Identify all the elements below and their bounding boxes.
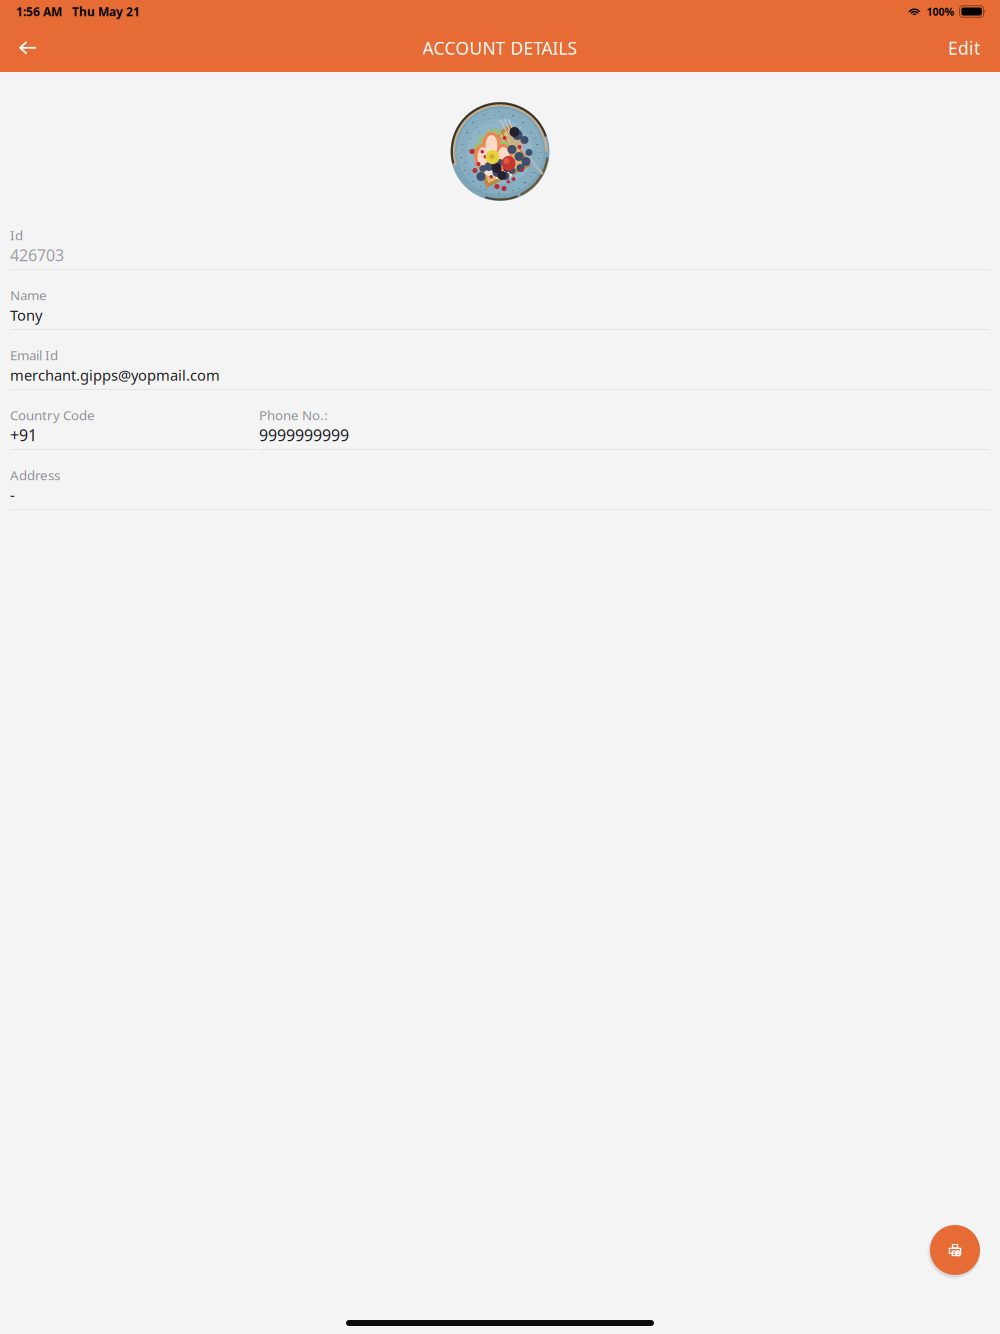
button[interactable]: Print settings bbox=[927, 1222, 983, 1278]
button[interactable]: Edit bbox=[940, 28, 980, 68]
staticText: merchant.gipps@yopmail.com bbox=[10, 365, 220, 385]
staticText: Name bbox=[10, 286, 47, 304]
staticText: 1:56 AM bbox=[16, 3, 62, 19]
staticText: Tony bbox=[10, 305, 42, 325]
staticText: Address bbox=[10, 466, 60, 484]
staticText: 100% bbox=[927, 4, 955, 19]
staticText: Email Id bbox=[10, 346, 58, 364]
staticText: +91 bbox=[10, 424, 37, 446]
staticText: 426703 bbox=[10, 244, 64, 266]
staticText: Id bbox=[10, 226, 23, 244]
staticText: Phone No.: bbox=[259, 406, 328, 424]
staticText: Country Code bbox=[10, 406, 95, 424]
staticText: Edit bbox=[948, 36, 980, 60]
button[interactable]: Back bbox=[8, 28, 48, 68]
staticText: - bbox=[10, 485, 15, 505]
staticText: 9999999999 bbox=[259, 424, 349, 446]
staticText: Thu May 21 bbox=[72, 3, 140, 19]
staticText: ACCOUNT DETAILS bbox=[422, 36, 577, 60]
